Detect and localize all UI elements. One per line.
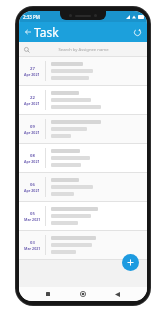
button[interactable]: 03 bbox=[19, 231, 147, 259]
button[interactable]: 09 bbox=[19, 115, 147, 143]
button[interactable]: Back bbox=[22, 22, 61, 42]
other: Back bbox=[24, 28, 32, 36]
other: Search bbox=[24, 47, 30, 53]
button[interactable]: Search by Assignee name bbox=[19, 42, 147, 57]
staticText: Apr 2021 bbox=[24, 130, 40, 135]
staticText: Task bbox=[34, 24, 59, 40]
button[interactable]: Back bbox=[112, 289, 123, 300]
staticText: 08 bbox=[30, 153, 35, 159]
staticText: 09 bbox=[30, 124, 35, 130]
button[interactable]: Add task bbox=[122, 254, 139, 271]
button[interactable]: 06 bbox=[19, 173, 147, 201]
staticText: 06 bbox=[30, 182, 35, 188]
staticText: 27 bbox=[30, 66, 35, 72]
button[interactable]: 05 bbox=[19, 202, 147, 230]
button[interactable]: Refresh bbox=[132, 27, 143, 38]
staticText: Apr 2021 bbox=[24, 159, 40, 164]
staticText: 2:33 PM bbox=[23, 14, 40, 20]
button[interactable]: 22 bbox=[19, 86, 147, 114]
staticText: 05 bbox=[30, 211, 35, 217]
staticText: 03 bbox=[30, 240, 35, 246]
staticText: Apr 2021 bbox=[24, 72, 40, 77]
staticText: Mar 2021 bbox=[24, 217, 41, 222]
button[interactable]: Home bbox=[77, 288, 89, 300]
staticText: Apr 2021 bbox=[24, 101, 40, 106]
staticText: Mar 2021 bbox=[24, 246, 41, 251]
staticText: Search by Assignee name bbox=[58, 47, 109, 53]
button[interactable]: Recents bbox=[43, 289, 53, 299]
staticText: 22 bbox=[30, 95, 35, 101]
staticText: Apr 2021 bbox=[24, 188, 40, 193]
button[interactable]: 27 bbox=[19, 57, 147, 85]
button[interactable]: 08 bbox=[19, 144, 147, 172]
